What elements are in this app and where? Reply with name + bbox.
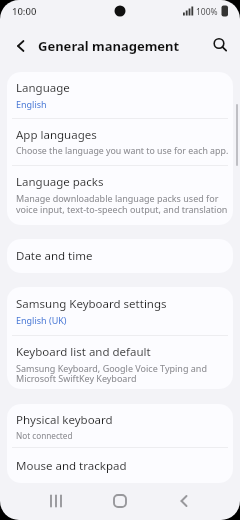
staticText: Keyboard list and default bbox=[16, 344, 151, 360]
button[interactable]: Mouse and trackpad bbox=[7, 448, 233, 483]
button[interactable] bbox=[204, 28, 240, 64]
staticText: Date and time bbox=[16, 248, 93, 264]
button[interactable] bbox=[152, 482, 216, 520]
button[interactable]: Language bbox=[7, 72, 233, 118]
button[interactable]: Physical keyboard bbox=[7, 404, 233, 447]
staticText: English bbox=[16, 98, 47, 110]
button[interactable]: Date and time bbox=[7, 239, 233, 273]
button[interactable]: Samsung Keyboard settings bbox=[7, 287, 233, 335]
staticText: Samsung Keyboard settings bbox=[16, 296, 167, 312]
staticText: Not connected bbox=[16, 430, 73, 441]
staticText: 10:00 bbox=[12, 5, 37, 18]
staticText: Language packs bbox=[16, 174, 104, 190]
staticText: General management bbox=[38, 37, 180, 55]
staticText: Samsung Keyboard, Google Voice Typing an… bbox=[16, 362, 207, 385]
staticText: Mouse and trackpad bbox=[16, 458, 127, 474]
button[interactable]: App languages bbox=[7, 119, 233, 165]
staticText: App languages bbox=[16, 127, 97, 143]
staticText: 100% bbox=[196, 6, 218, 18]
staticText: English (UK) bbox=[16, 314, 67, 326]
button[interactable]: Keyboard list and default bbox=[7, 336, 233, 389]
button[interactable] bbox=[0, 28, 36, 64]
button[interactable] bbox=[24, 482, 88, 520]
staticText: Language bbox=[16, 80, 70, 96]
staticText: Choose the language you want to use for … bbox=[16, 145, 228, 157]
button[interactable] bbox=[88, 482, 152, 520]
staticText: Manage downloadable language packs used … bbox=[16, 192, 228, 216]
staticText: Physical keyboard bbox=[16, 412, 113, 428]
button[interactable]: Language packs bbox=[7, 166, 233, 225]
